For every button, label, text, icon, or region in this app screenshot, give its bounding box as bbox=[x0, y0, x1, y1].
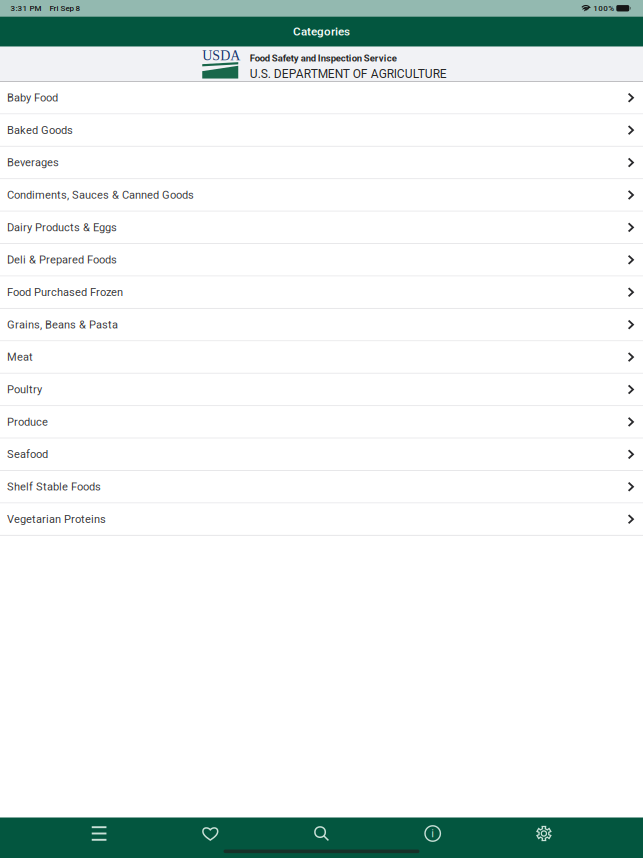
staticText: Grains, Beans & Pasta bbox=[7, 318, 118, 331]
staticText: Baby Food bbox=[7, 91, 58, 104]
button[interactable]: Information bbox=[377, 816, 488, 850]
button[interactable]: Condiments, Sauces & Canned Goods bbox=[0, 179, 643, 212]
staticText: U.S. DEPARTMENT OF AGRICULTURE bbox=[250, 67, 447, 81]
staticText: Produce bbox=[7, 415, 48, 428]
button[interactable]: Baby Food bbox=[0, 82, 643, 114]
staticText: Deli & Prepared Foods bbox=[7, 253, 117, 266]
button[interactable]: Meat bbox=[0, 341, 643, 374]
button[interactable]: Shelf Stable Foods bbox=[0, 471, 643, 503]
button[interactable]: Grains, Beans & Pasta bbox=[0, 309, 643, 341]
button[interactable]: Search bbox=[266, 816, 377, 850]
staticText: Shelf Stable Foods bbox=[7, 480, 101, 493]
button[interactable]: Poultry bbox=[0, 374, 643, 406]
staticText: Poultry bbox=[7, 383, 42, 396]
staticText: 3:31 PM bbox=[11, 4, 42, 13]
button[interactable]: Settings bbox=[488, 816, 599, 850]
button[interactable]: Beverages bbox=[0, 147, 643, 179]
button[interactable]: Menu bbox=[43, 816, 155, 850]
button[interactable]: Baked Goods bbox=[0, 114, 643, 147]
staticText: Seafood bbox=[7, 448, 48, 461]
staticText: Beverages bbox=[7, 156, 59, 169]
button[interactable]: Produce bbox=[0, 406, 643, 439]
button[interactable]: Food Purchased Frozen bbox=[0, 276, 643, 309]
staticText: Meat bbox=[7, 351, 33, 364]
staticText: Baked Goods bbox=[7, 124, 73, 137]
button[interactable]: Favorites bbox=[155, 816, 266, 850]
button[interactable]: Deli & Prepared Foods bbox=[0, 244, 643, 276]
staticText: Food Purchased Frozen bbox=[7, 286, 123, 299]
staticText: Condiments, Sauces & Canned Goods bbox=[7, 188, 194, 201]
staticText: Fri Sep 8 bbox=[50, 4, 81, 13]
staticText: Vegetarian Proteins bbox=[7, 513, 106, 526]
staticText: 100% bbox=[593, 4, 614, 13]
staticText: Dairy Products & Eggs bbox=[7, 221, 117, 234]
staticText: USDA bbox=[202, 48, 240, 63]
staticText: i bbox=[431, 827, 434, 840]
button[interactable]: Dairy Products & Eggs bbox=[0, 212, 643, 244]
button[interactable]: Seafood bbox=[0, 439, 643, 471]
button[interactable]: Vegetarian Proteins bbox=[0, 503, 643, 536]
staticText: Food Safety and Inspection Service bbox=[250, 53, 397, 64]
staticText: Categories bbox=[293, 25, 350, 38]
